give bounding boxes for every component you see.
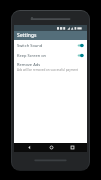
staticText: Keep Screen on	[17, 53, 77, 58]
staticText: Settings	[17, 32, 37, 39]
button[interactable]: Recents	[66, 143, 78, 152]
button[interactable]: Remove Ads	[14, 60, 87, 73]
button[interactable]: Toggle	[77, 53, 84, 58]
staticText: Ads will be removed on successful paymen…	[17, 68, 79, 72]
button[interactable]: Toggle	[77, 43, 84, 48]
button[interactable]: Switch Sound	[14, 40, 87, 50]
button[interactable]: Settings	[14, 31, 87, 40]
button[interactable]: Keep Screen on	[14, 50, 87, 60]
button[interactable]: Home	[45, 143, 57, 152]
staticText: Remove Ads	[17, 62, 41, 67]
button[interactable]: Back	[23, 143, 35, 152]
staticText: Switch Sound	[17, 43, 77, 48]
